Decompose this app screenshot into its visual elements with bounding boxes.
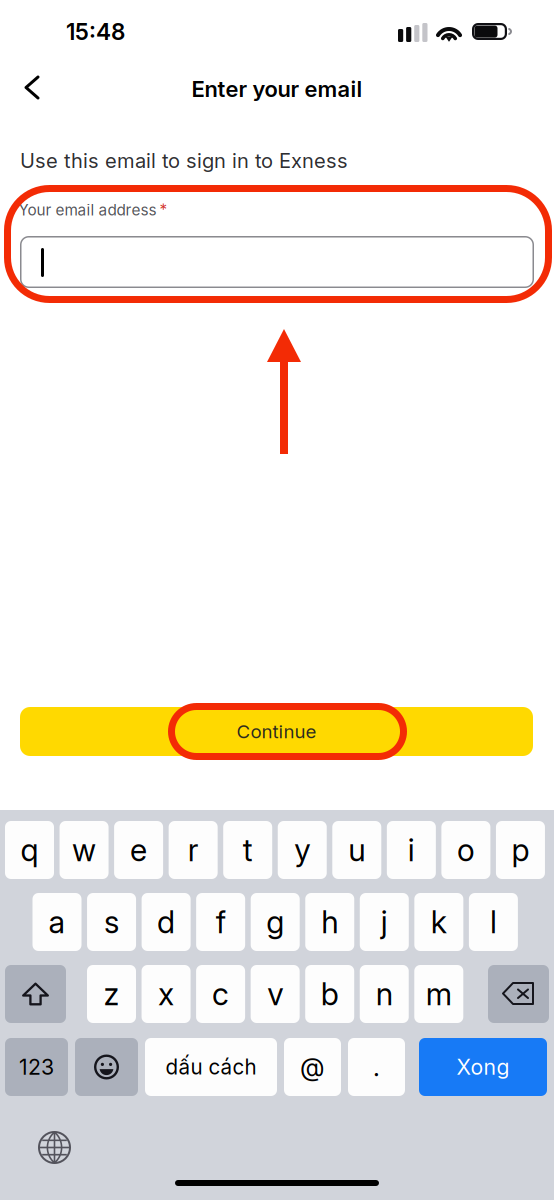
- staticText: *: [159, 201, 167, 219]
- button[interactable]: s: [87, 893, 136, 951]
- staticText: @: [300, 1052, 325, 1082]
- staticText: dấu cách: [165, 1054, 256, 1079]
- staticText: x: [158, 975, 174, 1012]
- button[interactable]: l: [469, 893, 518, 951]
- staticText: Xong: [456, 1054, 509, 1080]
- button[interactable]: g: [251, 893, 300, 951]
- button[interactable]: m: [414, 965, 463, 1023]
- staticText: g: [266, 903, 284, 940]
- button[interactable]: Back: [13, 66, 57, 110]
- button[interactable]: Emoji: [75, 1038, 138, 1096]
- button[interactable]: n: [360, 965, 409, 1023]
- staticText: Use this email to sign in to Exness: [20, 148, 348, 173]
- button[interactable]: z: [87, 965, 136, 1023]
- staticText: i: [408, 831, 415, 868]
- staticText: t: [243, 831, 253, 868]
- button[interactable]: x: [142, 965, 191, 1023]
- button[interactable]: t: [223, 821, 272, 879]
- button[interactable]: f: [196, 893, 245, 951]
- staticText: o: [457, 831, 475, 868]
- button[interactable]: 123: [5, 1038, 68, 1096]
- staticText: e: [130, 831, 147, 868]
- button[interactable]: a: [32, 893, 81, 951]
- staticText: p: [511, 831, 529, 868]
- staticText: u: [348, 831, 365, 868]
- staticText: q: [20, 831, 38, 868]
- button[interactable]: q: [5, 821, 54, 879]
- button[interactable]: p: [496, 821, 545, 879]
- button[interactable]: r: [169, 821, 218, 879]
- staticText: l: [490, 903, 497, 940]
- staticText: w: [72, 831, 96, 868]
- staticText: n: [376, 975, 393, 1012]
- staticText: c: [212, 975, 229, 1012]
- staticText: z: [103, 975, 119, 1012]
- button[interactable]: k: [414, 893, 463, 951]
- staticText: v: [267, 975, 283, 1012]
- button[interactable]: dấu cách: [145, 1038, 277, 1096]
- staticText: Enter your email: [191, 76, 362, 102]
- staticText: y: [294, 831, 310, 868]
- staticText: r: [188, 831, 199, 868]
- staticText: a: [48, 903, 65, 940]
- button[interactable]: Delete: [488, 965, 549, 1023]
- staticText: m: [426, 975, 452, 1012]
- button[interactable]: d: [142, 893, 191, 951]
- button[interactable]: y: [278, 821, 327, 879]
- staticText: f: [216, 903, 226, 940]
- button[interactable]: i: [387, 821, 436, 879]
- staticText: k: [431, 903, 447, 940]
- button[interactable]: @: [284, 1038, 341, 1096]
- staticText: 15:48: [66, 18, 125, 45]
- button[interactable]: c: [196, 965, 245, 1023]
- button[interactable]: h: [305, 893, 354, 951]
- staticText: b: [321, 975, 339, 1012]
- button[interactable]: u: [332, 821, 381, 879]
- button[interactable]: b: [305, 965, 354, 1023]
- button[interactable]: j: [360, 893, 409, 951]
- button[interactable]: w: [59, 821, 108, 879]
- button[interactable]: o: [441, 821, 490, 879]
- staticText: s: [104, 903, 119, 940]
- staticText: d: [157, 903, 175, 940]
- staticText: h: [321, 903, 338, 940]
- button[interactable]: .: [348, 1038, 405, 1096]
- button[interactable]: Continue: [20, 707, 533, 756]
- staticText: .: [373, 1052, 380, 1082]
- staticText: 123: [19, 1054, 54, 1080]
- button[interactable]: Shift: [5, 965, 66, 1023]
- staticText: Continue: [236, 720, 316, 743]
- staticText: j: [381, 903, 388, 940]
- staticText: Your email address: [18, 201, 156, 219]
- button[interactable]: v: [251, 965, 300, 1023]
- button[interactable]: e: [114, 821, 163, 879]
- button[interactable]: Xong: [419, 1038, 547, 1096]
